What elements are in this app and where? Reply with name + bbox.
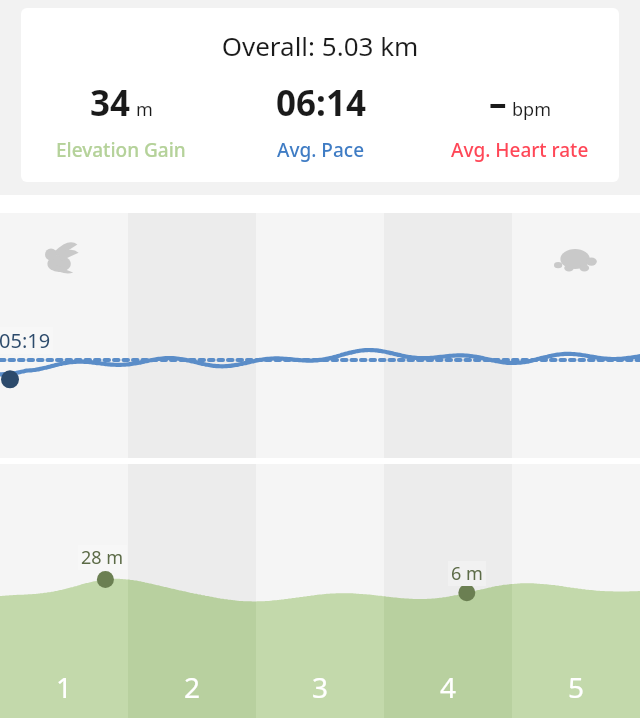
staticText: 34 xyxy=(90,79,131,127)
staticText: 1 xyxy=(56,668,73,706)
staticText: 28 m xyxy=(81,545,124,570)
button[interactable]: 5 xyxy=(512,668,640,706)
staticText: Elevation Gain xyxy=(56,137,186,163)
button[interactable]: 34 xyxy=(21,79,221,163)
button[interactable]: 06:14 xyxy=(221,79,420,163)
staticText: 6 m xyxy=(451,561,483,586)
staticText: – xyxy=(489,79,507,127)
staticText: Avg. Heart rate xyxy=(451,137,589,163)
staticText: 3 xyxy=(312,668,329,706)
staticText: 5 xyxy=(568,668,585,706)
button[interactable]: 4 xyxy=(384,668,512,706)
staticText: 05:19 xyxy=(0,327,51,354)
button[interactable]: – xyxy=(420,79,619,163)
staticText: 4 xyxy=(440,668,457,706)
button[interactable]: 2 xyxy=(128,668,256,706)
other: Starting pace 05:19 xyxy=(0,327,51,354)
staticText: bpm xyxy=(512,97,551,122)
staticText: m xyxy=(136,97,153,122)
staticText: Overall: 5.03 km xyxy=(21,28,619,63)
staticText: 2 xyxy=(184,668,201,706)
button[interactable]: Overall: 5.03 km xyxy=(21,8,619,182)
button[interactable]: 3 xyxy=(256,668,384,706)
staticText: Avg. Pace xyxy=(277,137,365,163)
staticText: 06:14 xyxy=(276,79,366,127)
button[interactable]: 1 xyxy=(0,668,128,706)
